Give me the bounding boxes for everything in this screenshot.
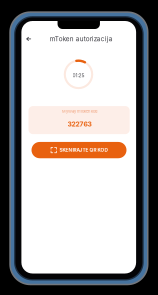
- button[interactable]: Back: [22, 32, 36, 46]
- staticText: MyWay mToken kod: [62, 109, 97, 114]
- staticText: 01:25: [72, 73, 84, 78]
- staticText: SKENIRAJTE QR KOD: [59, 147, 107, 153]
- button[interactable]: SKENIRAJTE QR KOD: [31, 142, 126, 158]
- staticText: mToken autorizacija: [50, 35, 113, 43]
- staticText: 322763: [68, 120, 92, 128]
